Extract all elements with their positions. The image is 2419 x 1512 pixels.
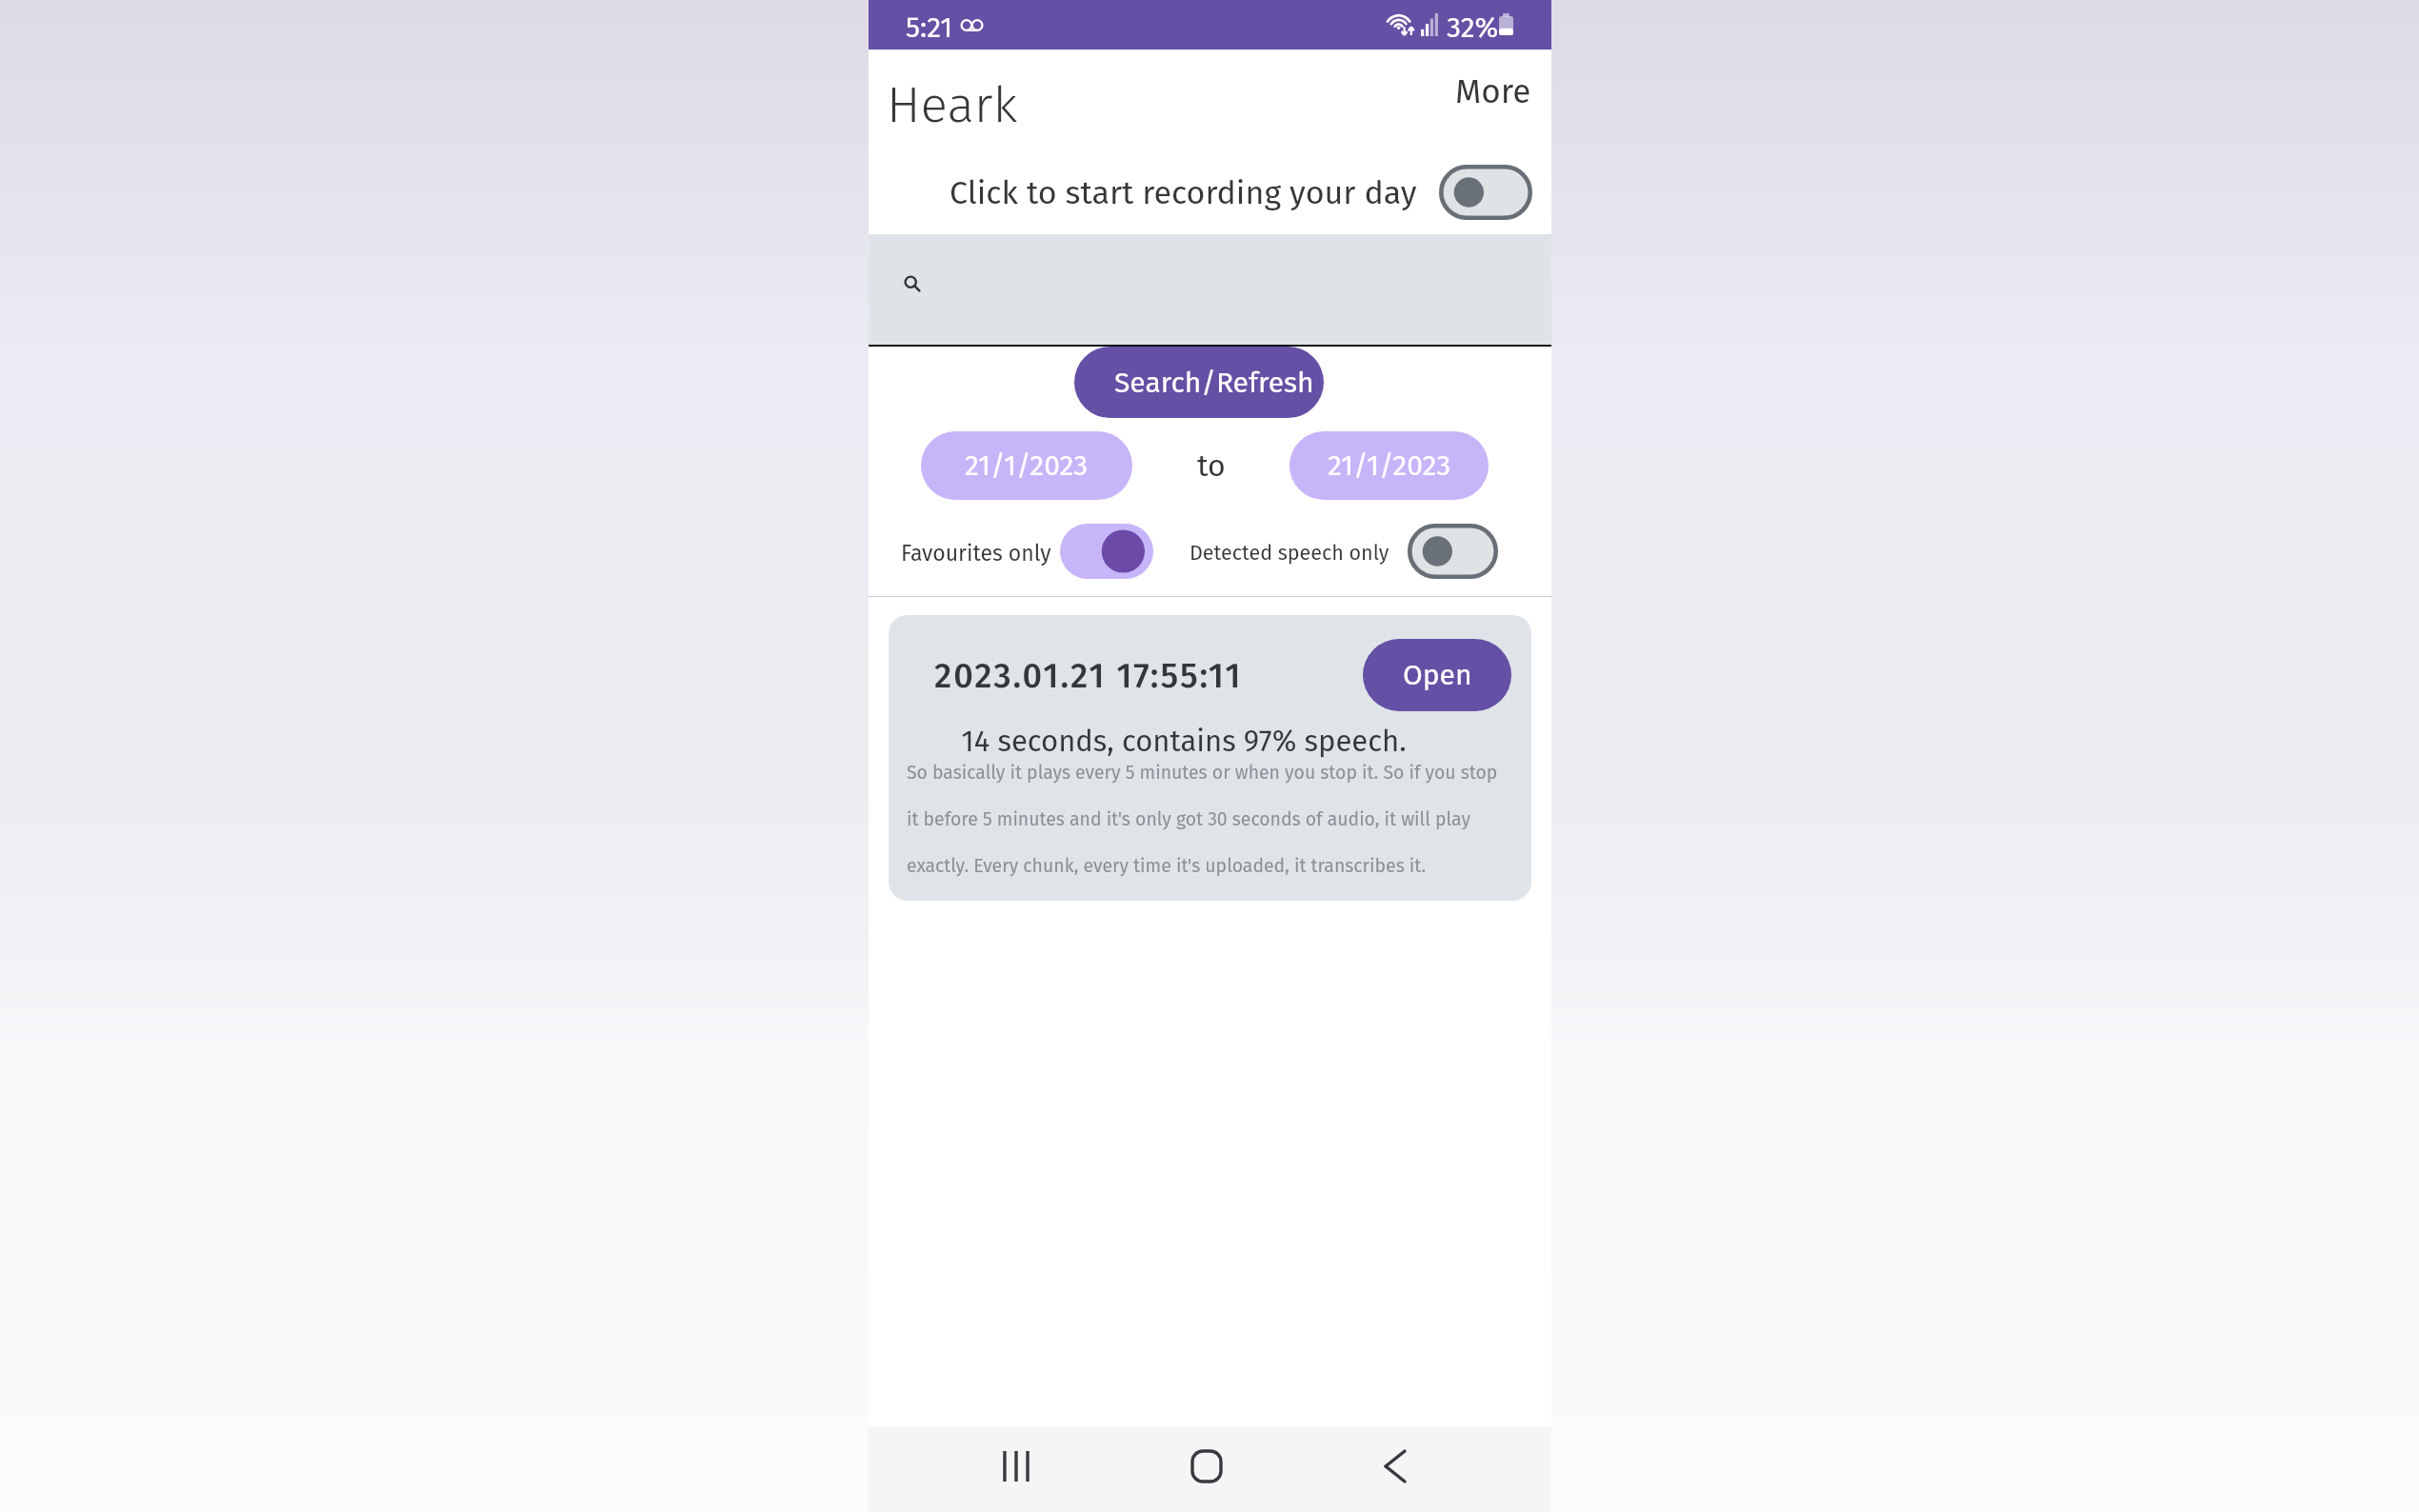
staticText: Open [1403,658,1472,692]
staticText: Search/Refresh [1114,366,1314,400]
staticText: 21/1/2023 [1328,448,1451,483]
button[interactable]: Recent apps [976,1426,1056,1506]
staticText: 14 seconds, contains 97% speech. [905,724,1463,759]
staticText: 21/1/2023 [965,448,1089,483]
button[interactable]: Search field [869,234,1551,345]
button[interactable]: 21/1/2023 [1289,431,1489,500]
button[interactable]: Favourites only [901,526,1051,581]
button[interactable]: 2023.01.21 17:55:11 [889,615,1531,901]
button[interactable]: More [1427,59,1551,125]
button[interactable]: Detected speech only [1190,526,1389,581]
staticText: 32% [1447,10,1499,45]
staticText: Favourites only [901,540,1051,567]
staticText: to [1197,448,1226,484]
staticText: More [1455,71,1531,111]
button[interactable]: Detected speech only toggle [1408,524,1498,579]
staticText: Detected speech only [1190,541,1389,566]
button[interactable]: Open [1363,639,1511,711]
staticText: 5:21 [906,10,953,45]
button[interactable]: 21/1/2023 [921,431,1132,500]
button[interactable]: Search/Refresh [1074,347,1324,418]
staticText: Heark [887,74,1018,135]
staticText: Click to start recording your day [950,173,1417,212]
button[interactable]: Home [1167,1426,1247,1506]
button[interactable]: Back [1355,1426,1435,1506]
staticText: So basically it plays every 5 minutes or… [907,762,1502,877]
button[interactable]: Favourites only toggle [1060,524,1153,579]
staticText: 2023.01.21 17:55:11 [934,655,1243,696]
button[interactable]: Click to start recording your day [869,150,1551,234]
